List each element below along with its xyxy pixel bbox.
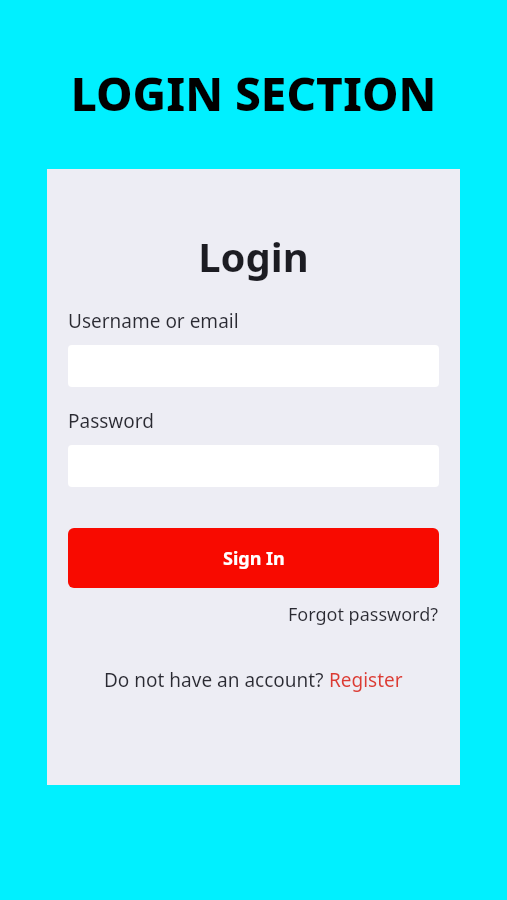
button[interactable]: Register <box>329 667 403 693</box>
staticText: Register <box>329 667 403 693</box>
staticText: Login <box>68 229 439 283</box>
button[interactable]: Sign In <box>68 528 439 588</box>
staticText: LOGIN SECTION <box>0 62 507 125</box>
staticText: Do not have an account? <box>104 667 329 693</box>
staticText: Username or email <box>68 308 239 334</box>
staticText: Password <box>68 408 154 434</box>
staticText: Sign In <box>223 546 285 571</box>
button[interactable]: Forgot password? <box>288 602 439 627</box>
staticText: Forgot password? <box>288 602 439 627</box>
